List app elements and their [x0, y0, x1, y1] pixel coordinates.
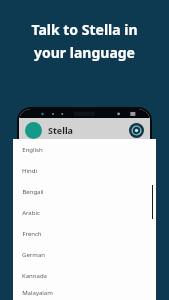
- staticText: your language: [34, 43, 135, 62]
- button[interactable]: Profile: [25, 122, 42, 139]
- staticText: Kannada: [22, 272, 47, 280]
- button[interactable]: Kannada: [13, 265, 156, 286]
- staticText: Bengali: [22, 188, 44, 196]
- staticText: Malayalam: [22, 289, 53, 297]
- staticText: Talk to Stella in: [31, 20, 138, 39]
- staticText: Stella: [48, 124, 73, 136]
- staticText: Arabic: [22, 209, 40, 217]
- button[interactable]: German: [13, 244, 156, 265]
- staticText: Hindi: [22, 167, 37, 175]
- button[interactable]: Hindi: [13, 160, 156, 181]
- button[interactable]: English: [13, 139, 156, 160]
- staticText: French: [22, 230, 42, 238]
- button[interactable]: Arabic: [13, 202, 156, 223]
- button[interactable]: Malayalam: [13, 286, 156, 300]
- button[interactable]: Bengali: [13, 181, 156, 202]
- staticText: English: [22, 146, 43, 154]
- staticText: German: [22, 251, 45, 259]
- button[interactable]: French: [13, 223, 156, 244]
- button[interactable]: Settings: [129, 123, 144, 138]
